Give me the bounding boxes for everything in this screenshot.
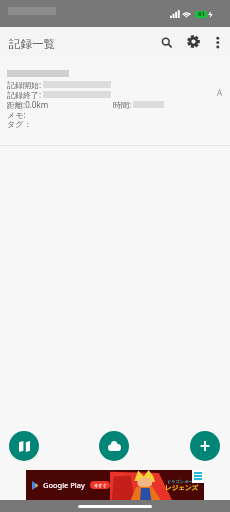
button[interactable]: More options bbox=[206, 30, 230, 54]
staticText: Google Play bbox=[43, 480, 85, 490]
staticText: 81 bbox=[198, 10, 205, 18]
button[interactable]: Cloud bbox=[99, 431, 129, 461]
staticText: 今すぐ bbox=[94, 483, 107, 488]
staticText: タグ： bbox=[7, 119, 32, 129]
staticText: 距離:0.0km bbox=[7, 99, 49, 109]
staticText: A bbox=[217, 87, 223, 98]
staticText: 記録開始: bbox=[7, 79, 42, 89]
button[interactable]: Advertisement bbox=[26, 470, 204, 500]
staticText: ドラゴンボール bbox=[167, 479, 197, 484]
staticText: レジェンズ bbox=[165, 484, 199, 492]
button[interactable]: Map bbox=[9, 431, 39, 461]
button[interactable]: 記録開始: bbox=[0, 62, 230, 145]
button[interactable]: Settings bbox=[181, 29, 207, 55]
staticText: 記録終了: bbox=[7, 89, 42, 99]
button[interactable]: Add bbox=[190, 431, 220, 461]
button[interactable]: Search bbox=[153, 29, 179, 55]
staticText: メモ: bbox=[7, 109, 26, 119]
staticText: 時間: bbox=[113, 99, 132, 109]
staticText: 記録一覧 bbox=[9, 37, 55, 51]
